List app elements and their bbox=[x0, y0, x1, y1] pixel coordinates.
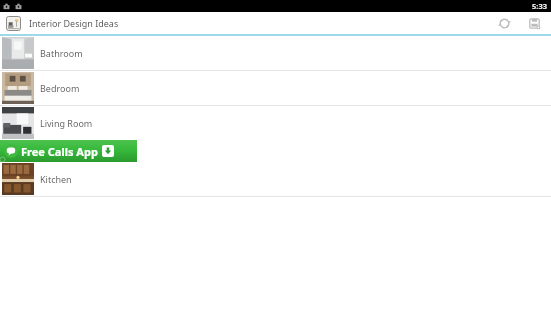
button[interactable]: Bedroom bbox=[0, 71, 551, 105]
staticText: Interior Design Ideas bbox=[29, 17, 119, 29]
button[interactable]: Living Room bbox=[0, 106, 551, 140]
staticText: Bathroom bbox=[40, 47, 83, 59]
staticText: Free Calls App bbox=[21, 144, 98, 159]
button[interactable]: Free Calls App bbox=[0, 140, 137, 162]
button[interactable]: Save bbox=[523, 12, 545, 34]
staticText: 5:33 bbox=[532, 1, 547, 11]
button[interactable]: Bathroom bbox=[0, 36, 551, 70]
button[interactable]: Refresh bbox=[493, 12, 515, 34]
staticText: Living Room bbox=[40, 117, 93, 129]
staticText: Kitchen bbox=[40, 173, 72, 185]
staticText: Bedroom bbox=[40, 82, 80, 94]
button[interactable]: App icon bbox=[6, 16, 21, 31]
button[interactable]: Kitchen bbox=[0, 162, 551, 196]
